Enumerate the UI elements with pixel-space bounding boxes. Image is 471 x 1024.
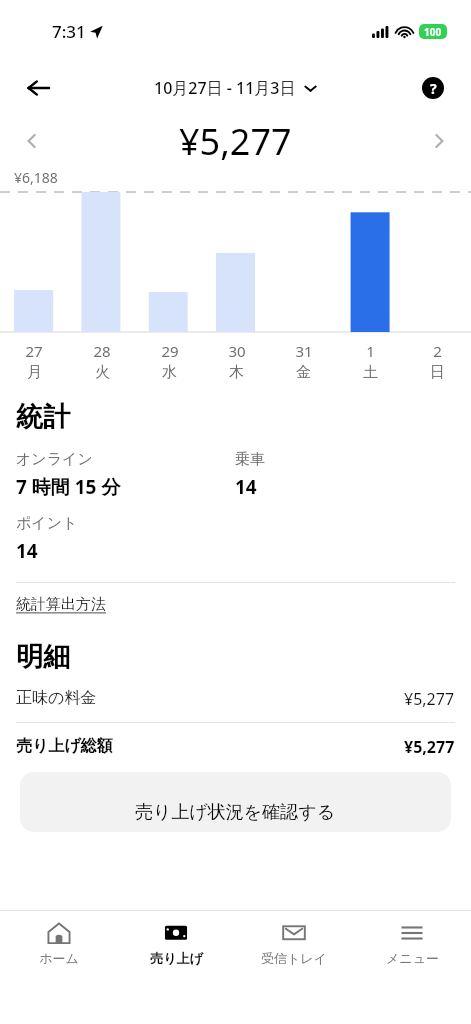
button[interactable]: ホーム bbox=[0, 911, 117, 966]
staticText: ¥5,277 bbox=[179, 117, 292, 166]
staticText: 日 bbox=[430, 363, 445, 382]
staticText: 売り上げ bbox=[150, 950, 203, 966]
staticText: ホーム bbox=[39, 950, 79, 966]
staticText: 27 bbox=[25, 341, 43, 361]
staticText: 火 bbox=[95, 363, 110, 382]
button[interactable]: 正味の料金 bbox=[16, 688, 455, 710]
staticText: 31 bbox=[295, 341, 313, 361]
button[interactable]: Back bbox=[18, 68, 58, 108]
staticText: 30 bbox=[228, 341, 246, 361]
staticText: 100 bbox=[424, 25, 442, 39]
staticText: メニュー bbox=[386, 950, 439, 966]
staticText: 14 bbox=[235, 474, 257, 500]
staticText: 10月27日 - 11月3日 bbox=[154, 77, 296, 99]
staticText: ¥5,277 bbox=[404, 736, 455, 758]
button[interactable]: Help bbox=[413, 68, 453, 108]
staticText: 月 bbox=[27, 363, 42, 382]
button[interactable]: Previous week bbox=[14, 123, 50, 159]
staticText: 29 bbox=[161, 341, 179, 361]
staticText: オンライン bbox=[16, 450, 93, 469]
staticText: 1 bbox=[366, 341, 375, 361]
staticText: 7:31 bbox=[52, 20, 86, 43]
button[interactable]: 売り上げ bbox=[117, 911, 235, 966]
staticText: 28 bbox=[93, 341, 111, 361]
staticText: 統計算出方法 bbox=[16, 595, 106, 614]
staticText: 2 bbox=[433, 341, 442, 361]
staticText: 木 bbox=[229, 363, 244, 382]
staticText: ¥6,188 bbox=[14, 168, 58, 187]
button[interactable]: 統計算出方法 bbox=[16, 595, 106, 614]
staticText: 受信トレイ bbox=[261, 950, 327, 966]
staticText: 乗車 bbox=[235, 450, 265, 469]
button[interactable]: 受信トレイ bbox=[235, 911, 353, 966]
staticText: 水 bbox=[162, 363, 177, 382]
staticText: 売り上げ状況を確認する bbox=[135, 801, 336, 824]
button[interactable]: 10月27日 - 11月3日 bbox=[154, 77, 317, 99]
staticText: 金 bbox=[296, 363, 311, 382]
staticText: ポイント bbox=[16, 514, 78, 533]
staticText: 7 時間 15 分 bbox=[16, 474, 121, 500]
staticText: 明細 bbox=[16, 640, 70, 674]
staticText: 売り上げ総額 bbox=[16, 736, 113, 756]
staticText: 14 bbox=[16, 538, 38, 564]
button[interactable]: メニュー bbox=[353, 911, 471, 966]
staticText: 正味の料金 bbox=[16, 688, 97, 708]
button[interactable]: Next week bbox=[421, 123, 457, 159]
staticText: 土 bbox=[363, 363, 378, 382]
staticText: 統計 bbox=[16, 400, 70, 434]
staticText: ¥5,277 bbox=[404, 688, 455, 710]
staticText: ? bbox=[430, 79, 437, 98]
button[interactable]: 売り上げ状況を確認する bbox=[20, 772, 451, 832]
